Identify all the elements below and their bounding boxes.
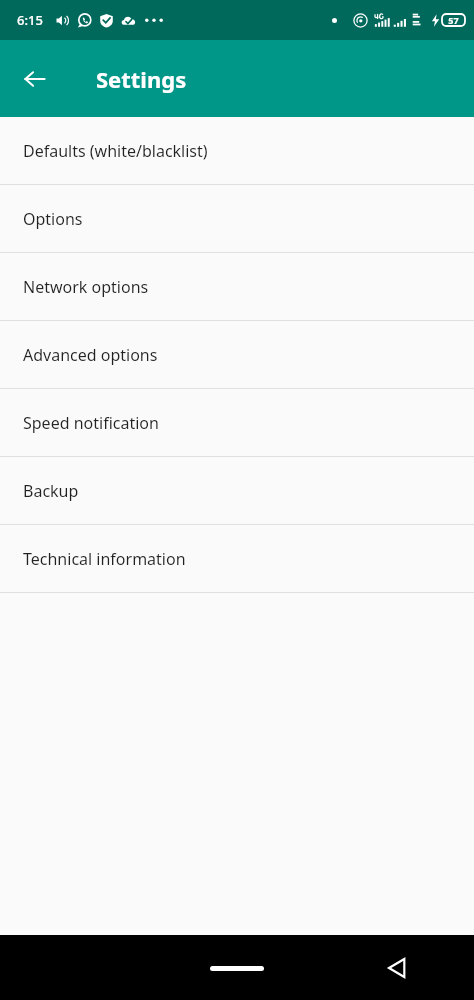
staticText: 57 [448, 14, 459, 26]
button[interactable]: Options [0, 185, 474, 252]
button[interactable]: Technical information [0, 525, 474, 592]
staticText: Defaults (white/blacklist) [23, 140, 208, 162]
button[interactable]: Defaults (white/blacklist) [0, 117, 474, 184]
staticText: Backup [23, 480, 79, 502]
staticText: Settings [96, 64, 187, 94]
button[interactable]: Back [11, 55, 59, 103]
staticText: Network options [23, 276, 149, 298]
staticText: Advanced options [23, 344, 158, 366]
staticText: Technical information [23, 548, 186, 570]
button[interactable]: Back [376, 948, 416, 988]
button[interactable]: Advanced options [0, 321, 474, 388]
button[interactable]: Home [192, 950, 282, 986]
staticText: 6:15 [17, 11, 43, 29]
button[interactable]: Network options [0, 253, 474, 320]
staticText: Options [23, 208, 83, 230]
button[interactable]: Backup [0, 457, 474, 524]
button[interactable]: Speed notification [0, 389, 474, 456]
staticText: Speed notification [23, 412, 159, 434]
